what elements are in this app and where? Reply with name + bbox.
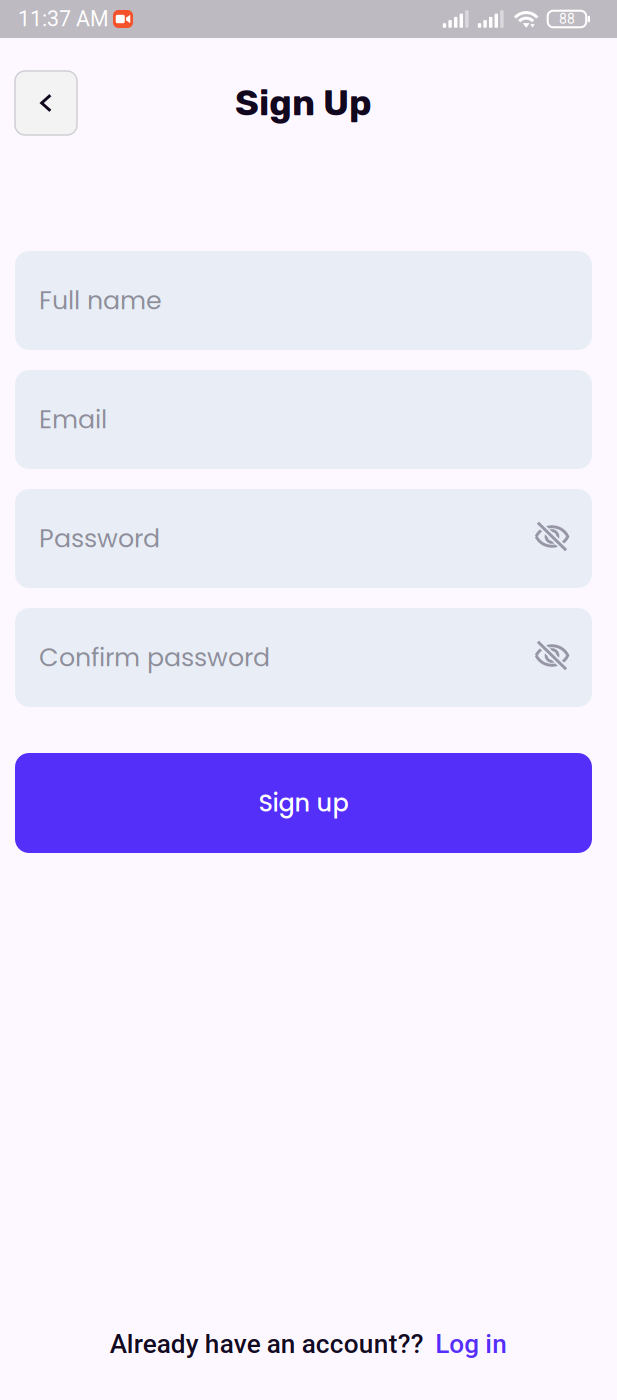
staticText: Confirm password <box>39 640 270 675</box>
button[interactable]: Password <box>15 489 592 588</box>
staticText: 88 <box>559 11 575 27</box>
staticText: Sign Up <box>235 82 372 124</box>
staticText: 11:37 AM <box>18 6 109 31</box>
button[interactable]: Back <box>15 71 77 135</box>
staticText: Sign up <box>258 786 348 820</box>
staticText: Email <box>39 402 107 437</box>
button[interactable]: Email <box>15 370 592 469</box>
button[interactable]: Log in <box>435 1329 507 1359</box>
staticText: Full name <box>39 283 162 318</box>
staticText: Password <box>39 521 160 556</box>
button[interactable]: Show Password <box>529 489 575 588</box>
staticText: Log in <box>435 1329 507 1359</box>
staticText: Already have an account?? <box>110 1329 424 1359</box>
button[interactable]: Sign up <box>15 753 592 853</box>
button[interactable]: Show Confirm password <box>529 608 575 707</box>
button[interactable]: Full name <box>15 251 592 350</box>
button[interactable]: Confirm password <box>15 608 592 707</box>
